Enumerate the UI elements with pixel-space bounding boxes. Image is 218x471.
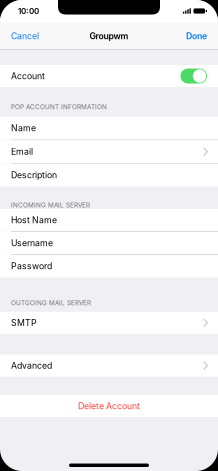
button[interactable]: Host Name	[0, 209, 218, 231]
button[interactable]: Username	[0, 232, 218, 254]
staticText: Delete Account	[78, 401, 140, 411]
button[interactable]: SMTP	[0, 312, 218, 334]
staticText: SMTP	[11, 317, 37, 328]
staticText: 10:00	[18, 6, 39, 16]
staticText: Username	[11, 238, 53, 248]
staticText: Host Name	[11, 215, 57, 225]
staticText: POP ACCOUNT INFORMATION	[11, 103, 107, 111]
button[interactable]: Email	[0, 140, 218, 163]
staticText: Password	[11, 261, 52, 271]
button[interactable]: Delete Account	[0, 395, 218, 417]
staticText: Name	[11, 123, 36, 133]
staticText: Groupwm	[89, 31, 128, 41]
staticText: INCOMING MAIL SERVER	[11, 201, 90, 209]
staticText: Advanced	[11, 360, 52, 371]
button[interactable]: Account	[0, 65, 218, 87]
button[interactable]: Description	[0, 164, 218, 187]
button[interactable]: Password	[0, 255, 218, 277]
staticText: Description	[11, 170, 57, 180]
button[interactable]: Advanced	[0, 355, 218, 377]
button[interactable]: Cancel	[0, 22, 47, 50]
staticText: Account	[11, 71, 45, 81]
button[interactable]: Name	[0, 117, 218, 140]
staticText: Done	[186, 31, 207, 41]
staticText: Email	[11, 146, 33, 157]
staticText: OUTGOING MAIL SERVER	[11, 299, 91, 307]
staticText: Cancel	[11, 31, 39, 41]
button[interactable]: Done	[178, 22, 218, 50]
